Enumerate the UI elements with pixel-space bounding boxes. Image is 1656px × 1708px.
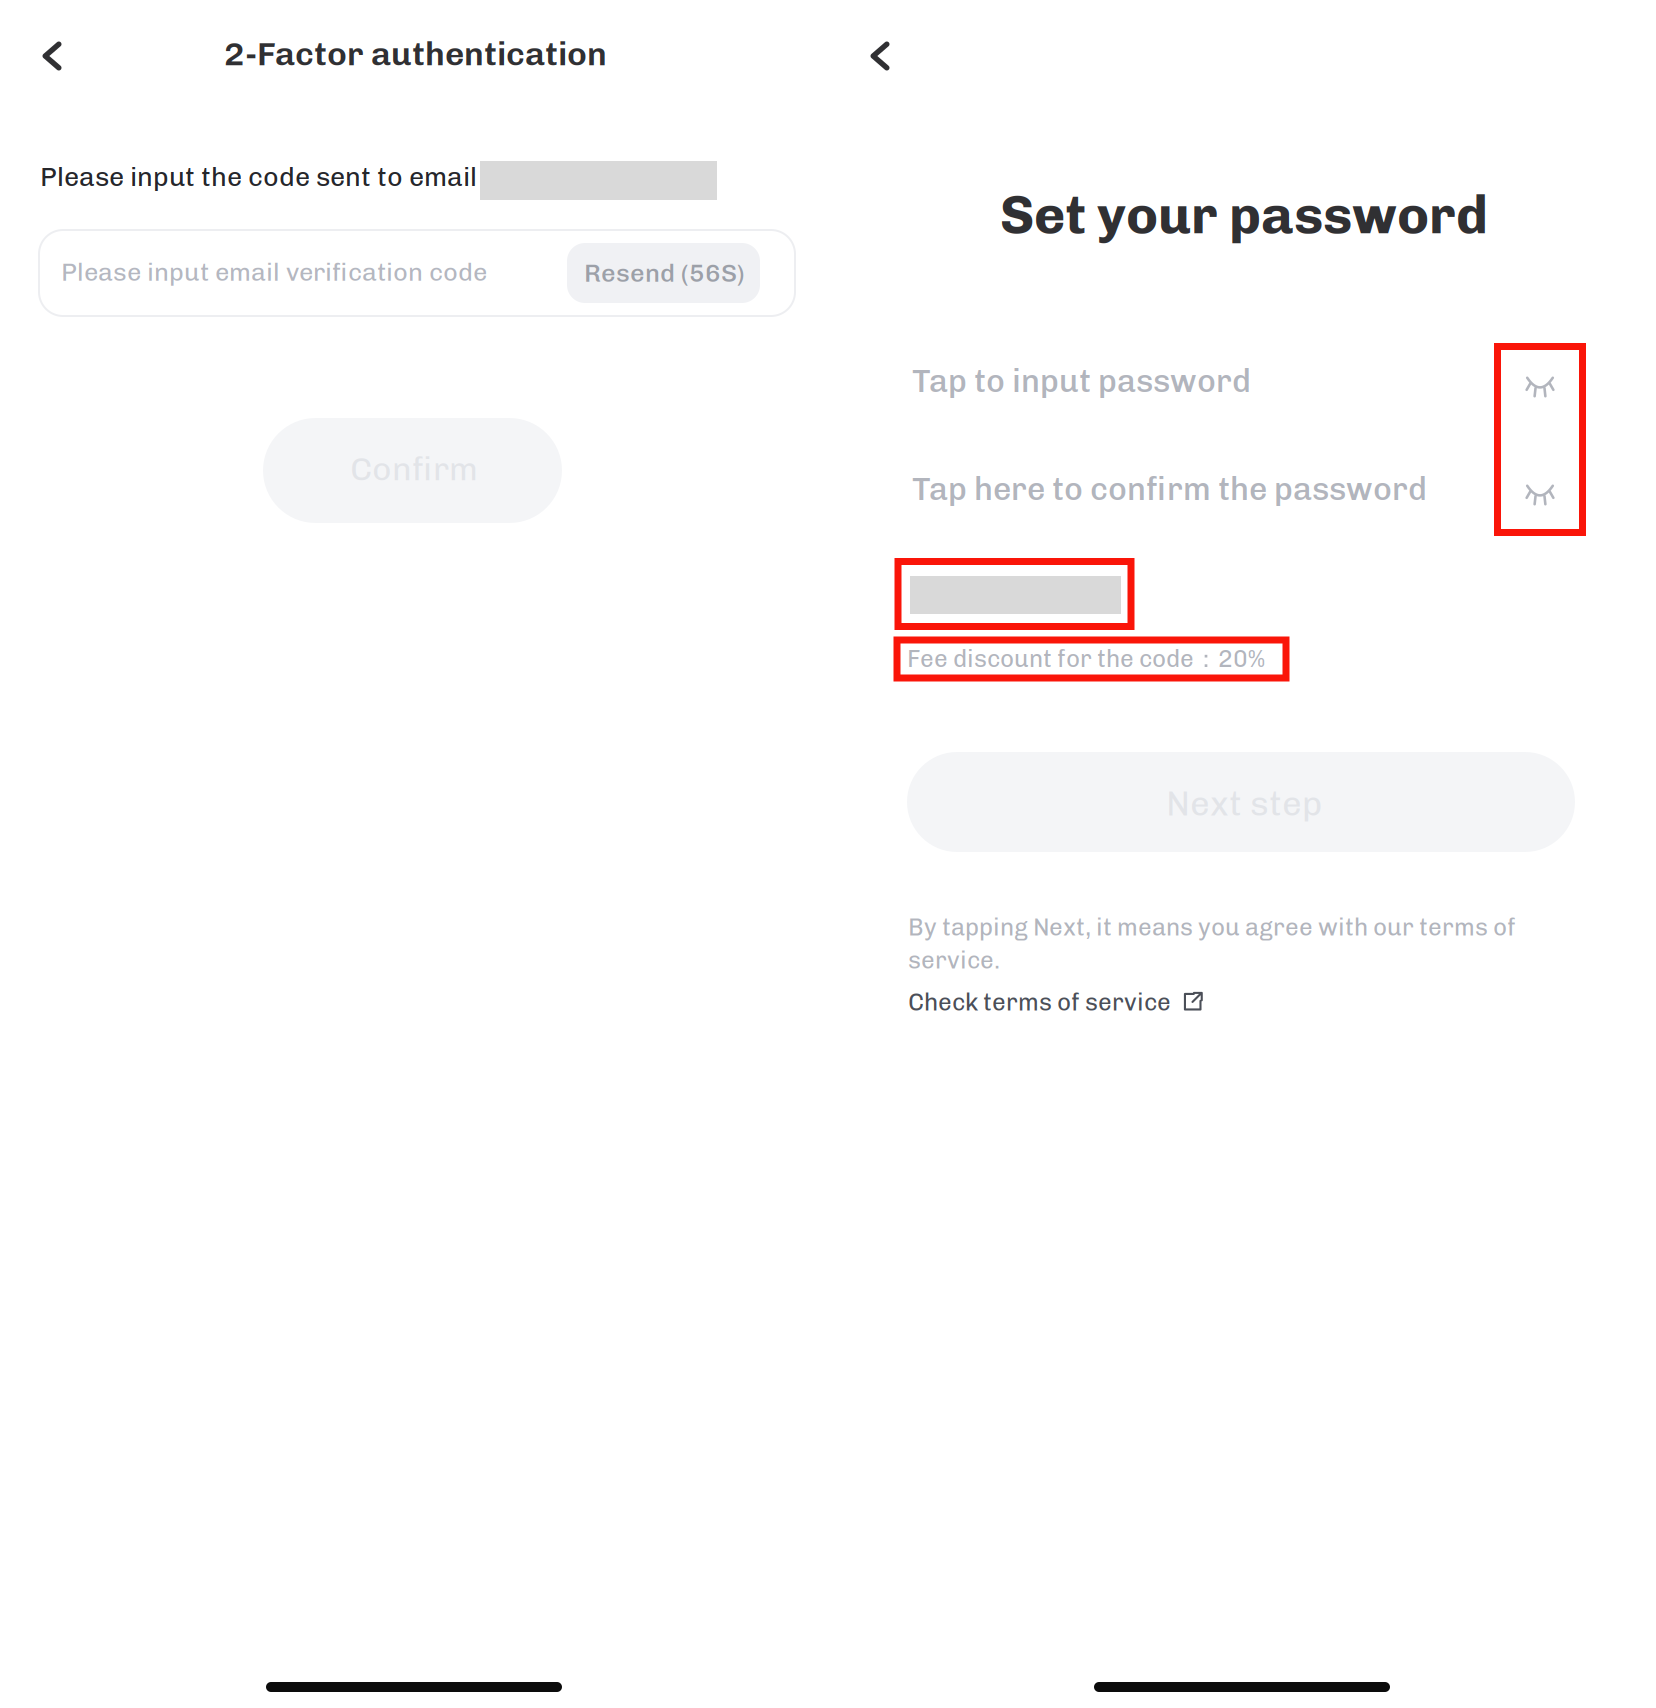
button[interactable]: Back <box>848 24 912 88</box>
button[interactable]: Confirm <box>263 418 562 523</box>
staticText: Set your password <box>1000 183 1488 246</box>
button[interactable]: Check terms of service <box>908 983 1208 1023</box>
button[interactable]: Show confirmation password <box>1494 447 1586 543</box>
staticText: Tap here to confirm the password <box>912 470 1427 508</box>
button[interactable]: Tap here to confirm the password <box>912 455 1472 519</box>
staticText: 2-Factor authentication <box>224 34 607 74</box>
staticText: Fee discount for the code：20% <box>907 644 1265 674</box>
staticText: Tap to input password <box>912 362 1251 400</box>
staticText: Resend (56S) <box>584 258 745 288</box>
button[interactable]: Show password <box>1494 339 1586 435</box>
staticText: By tapping Next, it means you agree with… <box>908 913 1516 942</box>
staticText: Check terms of service <box>908 988 1171 1017</box>
staticText: service. <box>908 946 1000 975</box>
button[interactable]: Back <box>20 24 84 88</box>
staticText: Confirm <box>350 449 478 489</box>
staticText: Please input email verification code <box>61 257 487 287</box>
staticText: Please input the code sent to email <box>40 161 477 193</box>
staticText: Next step <box>1166 783 1322 824</box>
button[interactable]: Tap to input password <box>912 347 1472 411</box>
button[interactable]: Resend (56S) <box>567 243 760 303</box>
